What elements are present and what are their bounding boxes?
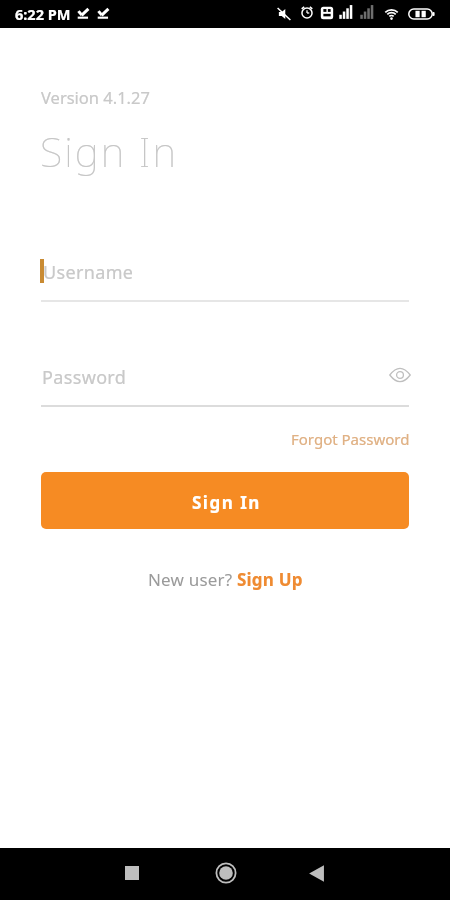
staticText: Version 4.1.27: [41, 86, 150, 108]
button[interactable]: Show password: [384, 359, 416, 391]
button[interactable]: Username: [41, 252, 409, 301]
staticText: Password: [42, 365, 127, 390]
button[interactable]: Password: [41, 357, 409, 405]
button[interactable]: Back: [293, 849, 341, 897]
button[interactable]: Recent apps: [108, 849, 156, 897]
button[interactable]: Sign In: [41, 472, 409, 529]
staticText: New user? Sign Up: [148, 568, 303, 591]
button[interactable]: Home: [202, 849, 250, 897]
staticText: Sign In: [40, 123, 178, 179]
staticText: Forgot Password: [291, 429, 410, 449]
staticText: Sign In: [192, 491, 261, 514]
button[interactable]: Forgot Password: [289, 425, 417, 452]
staticText: 6:22 PM: [15, 4, 71, 24]
staticText: Username: [43, 260, 134, 285]
button[interactable]: New user? Sign Up: [142, 564, 309, 595]
